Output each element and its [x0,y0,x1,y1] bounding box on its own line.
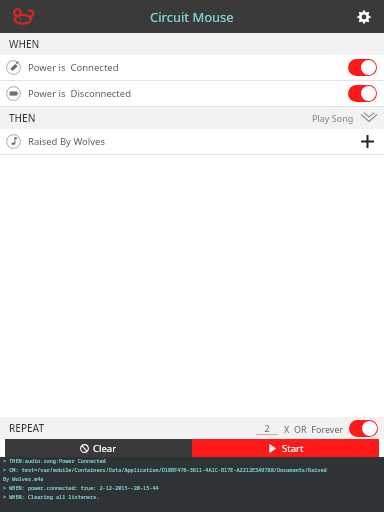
staticText: > WHEN: Clearing all listeners. [3,493,100,500]
staticText: X OR Forever [284,423,344,435]
button[interactable]: 2 [256,422,278,435]
staticText: By Wolves.m4a [3,475,44,482]
staticText: > THEN:audio.song:Power Connected [3,457,106,464]
button[interactable]: Settings [350,3,378,31]
staticText: WHEN [9,37,40,51]
staticText: Play Song [312,112,354,124]
button[interactable]: Play Song [312,112,378,124]
staticText: Power is Connected [28,61,119,74]
staticText: REPEAT [9,421,45,435]
staticText: Start [282,442,304,455]
button[interactable]: Power is Disconnected [0,81,384,106]
button[interactable]: Start [192,439,379,457]
button[interactable]: Clear [5,439,192,457]
staticText: 2 [256,422,278,434]
staticText: Circuit Mouse [150,8,234,26]
staticText: > WHEN: power.connected: true: 2-12-2015… [3,484,159,491]
button[interactable]: Add action [354,129,380,154]
staticText: > CM: test=/var/mobile/Containers/Data/A… [3,466,327,473]
staticText: Power is Disconnected [28,87,131,100]
staticText: Clear [93,442,117,455]
staticText: Raised By Wolves [28,135,105,148]
button[interactable]: Raised By Wolves [0,129,384,154]
button[interactable]: Toggle [349,420,378,437]
button[interactable]: Power is Connected [0,55,384,80]
staticText: THEN [9,111,36,125]
button[interactable]: Toggle [348,59,377,76]
button[interactable]: Circuit Mouse logo [6,0,40,33]
button[interactable]: Toggle [348,85,377,102]
